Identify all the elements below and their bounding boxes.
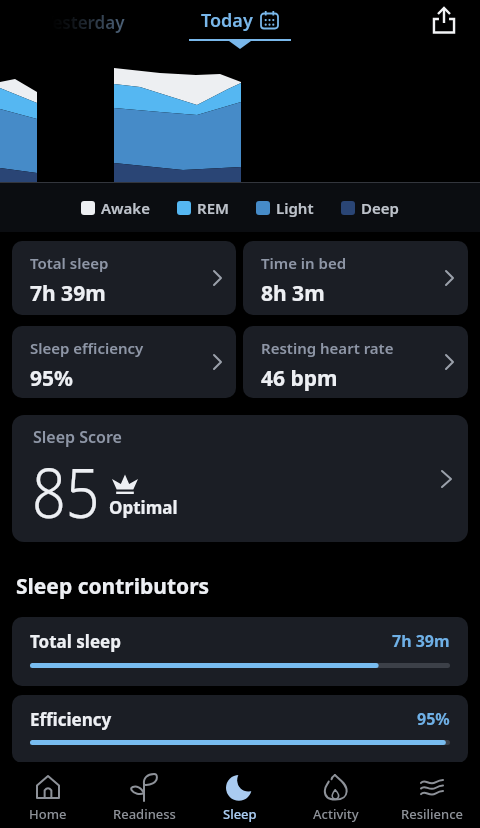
staticText: 7h 39m: [30, 279, 106, 308]
staticText: Resting heart rate: [261, 338, 394, 358]
staticText: Total sleep: [30, 630, 121, 653]
button[interactable]: Efficiency: [12, 695, 468, 763]
staticText: 95%: [417, 708, 450, 730]
staticText: Total sleep: [30, 253, 109, 273]
button[interactable]: Sleep: [192, 762, 288, 828]
staticText: Time in bed: [261, 253, 347, 273]
staticText: Today: [201, 8, 253, 33]
button[interactable]: Sleep Score: [12, 415, 468, 542]
button[interactable]: Total sleep: [12, 241, 236, 315]
staticText: Home: [29, 805, 67, 823]
staticText: Optimal: [109, 496, 178, 519]
button[interactable]: Yesterday: [43, 11, 125, 34]
staticText: Deep: [361, 198, 399, 218]
button[interactable]: Total sleep: [12, 617, 468, 686]
staticText: 95%: [30, 364, 73, 393]
button[interactable]: Home: [0, 762, 96, 828]
staticText: 7h 39m: [392, 630, 450, 652]
staticText: REM: [197, 198, 229, 218]
staticText: Readiness: [113, 805, 176, 823]
staticText: Sleep efficiency: [30, 338, 144, 358]
staticText: Sleep: [223, 805, 257, 823]
button[interactable]: Readiness: [96, 762, 192, 828]
staticText: Resilience: [401, 805, 463, 823]
staticText: Activity: [313, 805, 359, 823]
button[interactable]: Sleep efficiency: [12, 326, 236, 398]
button[interactable]: Today: [201, 8, 279, 33]
button[interactable]: Activity: [288, 762, 384, 828]
staticText: Efficiency: [30, 708, 112, 731]
staticText: Sleep contributors: [16, 572, 210, 601]
button[interactable]: Resilience: [384, 762, 480, 828]
staticText: Sleep Score: [33, 426, 122, 448]
staticText: 85: [32, 445, 100, 538]
button[interactable]: [430, 6, 458, 34]
staticText: 8h 3m: [261, 279, 325, 308]
staticText: Awake: [101, 198, 150, 218]
staticText: Light: [276, 198, 314, 218]
staticText: 46 bpm: [261, 364, 338, 393]
button[interactable]: Time in bed: [243, 241, 468, 315]
button[interactable]: Resting heart rate: [243, 326, 468, 398]
